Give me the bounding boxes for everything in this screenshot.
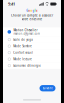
staticText: o <box>28 9 30 12</box>
staticText: Choisir un compte à associer <box>11 14 53 17</box>
staticText: Economie d'énergie <box>13 64 41 67</box>
button[interactable]: Suivant <box>39 85 55 91</box>
staticText: Confort visuel <box>13 51 33 54</box>
staticText: G <box>26 9 28 12</box>
button[interactable]: Confort visuel <box>3 49 61 56</box>
staticText: Suivant <box>42 86 52 90</box>
staticText: marion.c@gmail.com <box>13 32 39 35</box>
staticText: 9:41 <box>8 1 15 7</box>
staticText: o <box>30 9 32 12</box>
button[interactable]: Mode Sombre <box>3 43 61 49</box>
button[interactable]: Economie d'énergie <box>3 62 61 69</box>
staticText: Ecole de yoga <box>13 38 32 41</box>
staticText: Marion Chevalier <box>13 28 37 32</box>
staticText: e <box>36 9 38 12</box>
staticText: g <box>33 9 35 12</box>
button[interactable]: Ecole de yoga <box>3 36 61 43</box>
button[interactable]: Mode lecture <box>3 56 61 62</box>
staticText: Mode lecture <box>13 57 32 61</box>
button[interactable]: Marion Chevalier <box>3 27 61 36</box>
staticText: Mode Sombre <box>13 44 32 48</box>
staticText: votre enceinte <box>21 17 42 21</box>
staticText: l <box>35 9 36 12</box>
